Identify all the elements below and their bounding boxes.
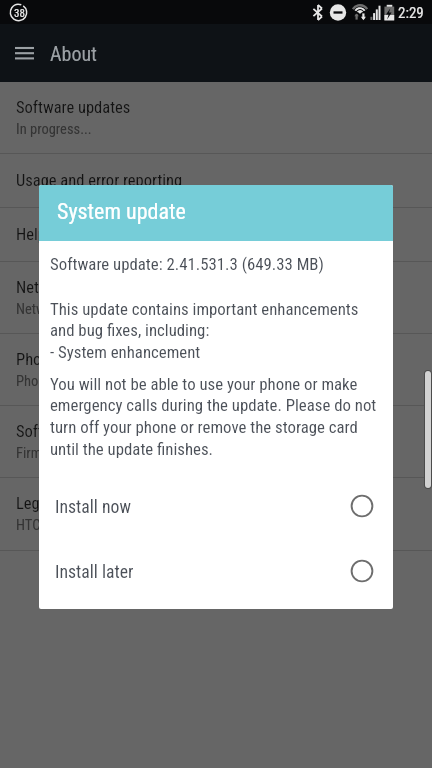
staticText: Help: [16, 225, 46, 244]
button[interactable]: Open navigation menu: [5, 34, 43, 72]
staticText: Usage and error reporting: [16, 171, 183, 190]
staticText: Legal: [16, 494, 52, 513]
button[interactable]: Help: [0, 208, 432, 261]
button[interactable]: Install now: [39, 472, 393, 537]
staticText: This update contains important enhanceme…: [50, 299, 384, 363]
button[interactable]: Legal: [0, 478, 432, 550]
button[interactable]: Usage and error reporting: [0, 154, 432, 207]
staticText: In progress...: [16, 121, 92, 138]
button[interactable]: Software updates: [0, 82, 432, 153]
staticText: 2:29: [398, 4, 424, 22]
staticText: System update: [57, 199, 186, 225]
button[interactable]: Network: [0, 262, 432, 333]
staticText: Install now: [55, 497, 131, 518]
staticText: You will not be able to use your phone o…: [50, 374, 384, 460]
staticText: Firmware, build number: [16, 445, 150, 462]
staticText: About: [50, 42, 98, 65]
staticText: 38: [14, 7, 25, 20]
button[interactable]: Install later: [39, 537, 393, 602]
staticText: Network information: [16, 301, 134, 318]
staticText: Phone information: [16, 373, 122, 390]
staticText: Network: [16, 278, 71, 297]
staticText: Phone: [16, 350, 58, 369]
staticText: Software information: [16, 422, 154, 441]
staticText: Install later: [55, 562, 134, 583]
staticText: HTC legal & regulatory: [16, 517, 144, 534]
staticText: Software update: 2.41.531.3 (649.33 MB): [50, 254, 324, 274]
staticText: Software updates: [16, 98, 131, 117]
button[interactable]: Phone: [0, 334, 432, 405]
button[interactable]: Software information: [0, 406, 432, 477]
